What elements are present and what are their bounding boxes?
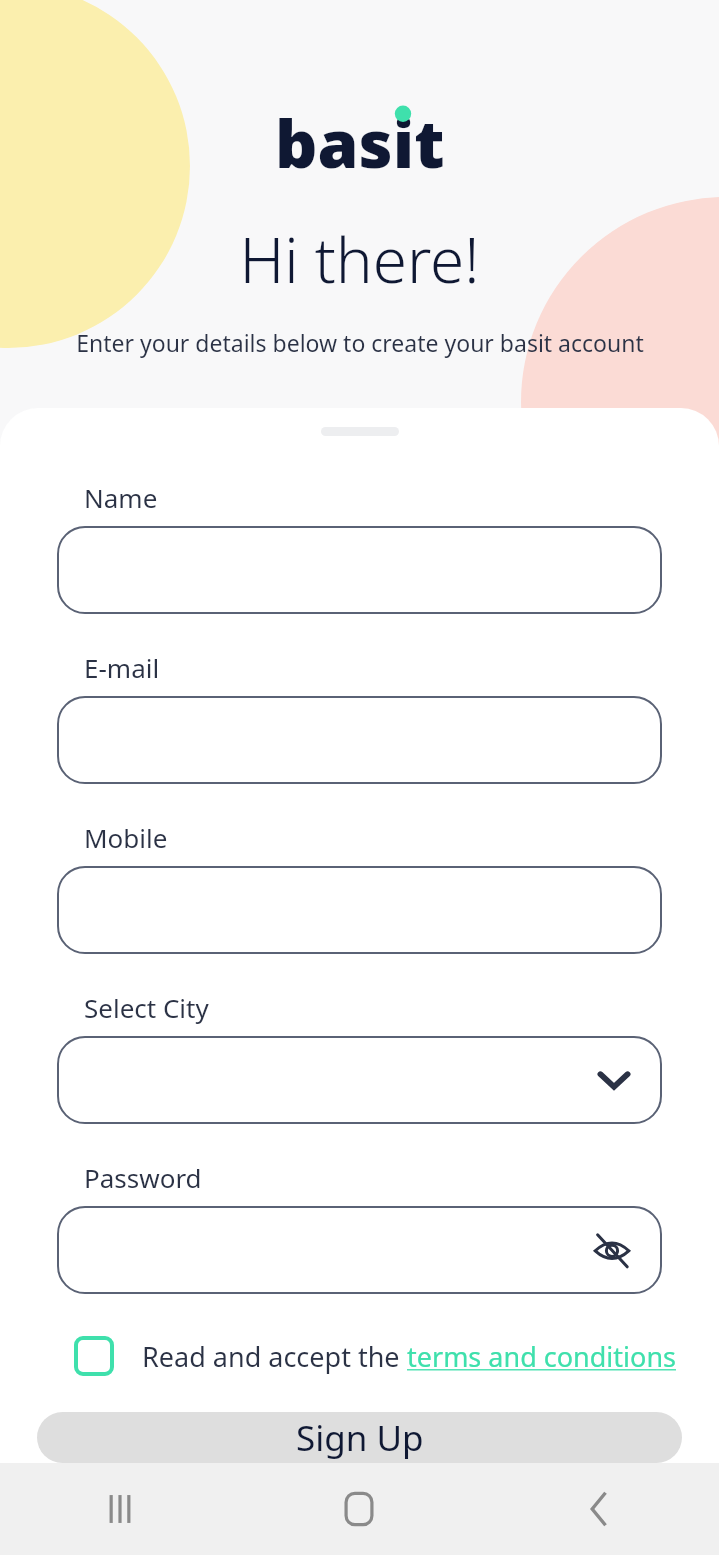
staticText: Password: [84, 1160, 202, 1195]
button[interactable]: Open city list: [57, 1036, 662, 1124]
staticText: Enter your details below to create your …: [76, 327, 644, 358]
button[interactable]: Home: [329, 1479, 389, 1539]
button[interactable]: Sign Up: [37, 1412, 682, 1463]
staticText: Sign Up: [296, 1414, 424, 1462]
button[interactable]: [57, 526, 662, 614]
staticText: terms and conditions: [407, 1338, 677, 1375]
staticText: Hi there!: [239, 217, 480, 301]
staticText: E-mail: [84, 650, 160, 685]
button[interactable]: Accept terms checkbox: [72, 1334, 116, 1378]
button[interactable]: terms and conditions: [407, 1338, 677, 1375]
staticText: basit: [275, 97, 445, 175]
button[interactable]: Show password: [57, 1206, 662, 1294]
button[interactable]: [57, 866, 662, 954]
staticText: Read and accept the: [142, 1338, 407, 1375]
button[interactable]: Show password: [588, 1226, 636, 1274]
button[interactable]: [57, 696, 662, 784]
staticText: Select City: [84, 990, 209, 1025]
button[interactable]: Back: [569, 1479, 629, 1539]
button[interactable]: Open city list: [592, 1058, 636, 1102]
button[interactable]: Recent apps: [90, 1479, 150, 1539]
staticText: Name: [84, 480, 158, 515]
staticText: Mobile: [84, 820, 168, 855]
